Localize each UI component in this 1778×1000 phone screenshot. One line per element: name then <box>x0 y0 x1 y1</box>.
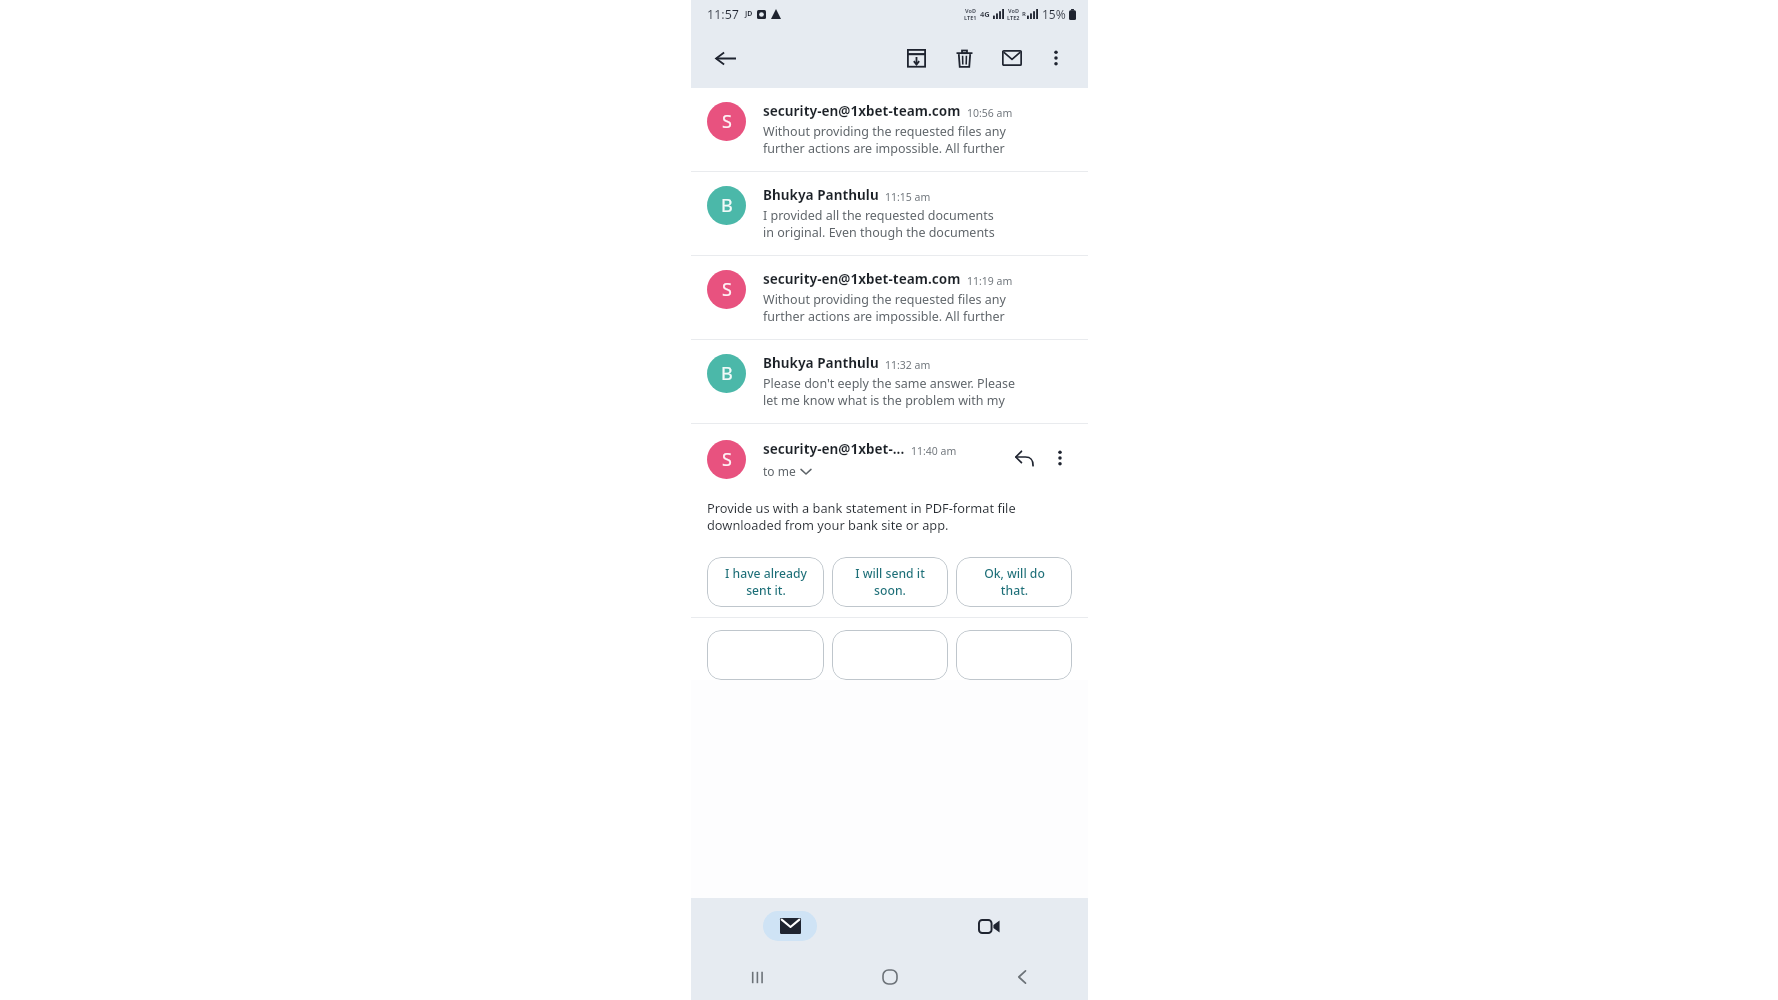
button[interactable]: Mail <box>763 911 817 941</box>
staticText: LTE2 <box>1007 14 1020 21</box>
staticText: security-en@1xbet-... <box>763 440 905 458</box>
button[interactable]: Reply <box>1006 440 1042 476</box>
staticText: Bhukya Panthulu <box>763 186 879 204</box>
button[interactable]: Delete <box>942 36 986 80</box>
staticText: security-en@1xbet-team.com <box>763 102 961 120</box>
staticText: Ok, will do that. <box>984 565 1045 599</box>
button[interactable]: S <box>691 256 1088 339</box>
staticText: 11:40 am <box>911 444 957 458</box>
button[interactable]: Back <box>956 954 1088 1000</box>
staticText: Bhukya Panthulu <box>763 354 879 372</box>
button[interactable]: Home <box>824 954 956 1000</box>
staticText: 4G <box>980 9 990 19</box>
staticText: 10:56 am <box>967 106 1013 120</box>
button[interactable]: Ok, will do that. <box>956 557 1072 607</box>
button[interactable]: Recents <box>691 954 824 1000</box>
staticText: in original. Even though the documents <box>763 224 995 241</box>
staticText: let me know what is the problem with my <box>763 392 1005 409</box>
button[interactable]: More options <box>1036 38 1076 78</box>
button[interactable] <box>956 630 1072 680</box>
staticText: Without providing the requested files an… <box>763 291 1006 308</box>
button[interactable] <box>707 630 824 680</box>
staticText: JD <box>745 9 753 19</box>
staticText: LTE1 <box>964 14 977 21</box>
button[interactable]: to me <box>763 463 811 479</box>
button[interactable]: B <box>691 172 1088 255</box>
staticText: S <box>722 277 732 302</box>
staticText: R <box>1022 10 1026 18</box>
button[interactable]: Mark unread <box>990 36 1034 80</box>
staticText: I will send it soon. <box>855 565 925 599</box>
button[interactable]: More options <box>1042 440 1078 476</box>
staticText: I provided all the requested documents <box>763 207 994 224</box>
staticText: B <box>721 361 733 386</box>
staticText: Please don't eeply the same answer. Plea… <box>763 375 1015 392</box>
staticText: S <box>722 447 732 472</box>
staticText: Provide us with a bank statement in PDF-… <box>707 499 1016 516</box>
staticText: to me <box>763 463 796 479</box>
staticText: 11:57 <box>707 6 739 23</box>
staticText: security-en@1xbet-team.com <box>763 270 961 288</box>
staticText: further actions are impossible. All furt… <box>763 140 1005 157</box>
staticText: 11:32 am <box>885 358 931 372</box>
button[interactable]: I will send it soon. <box>832 557 948 607</box>
staticText: S <box>722 109 732 134</box>
staticText: further actions are impossible. All furt… <box>763 308 1005 325</box>
staticText: downloaded from your bank site or app. <box>707 516 949 533</box>
staticText: VoD <box>1008 7 1019 14</box>
button[interactable]: Back <box>703 36 747 80</box>
staticText: 15% <box>1042 6 1066 22</box>
staticText: VoD <box>965 7 976 14</box>
button[interactable]: B <box>691 340 1088 423</box>
staticText: I have already sent it. <box>725 565 807 599</box>
staticText: 11:15 am <box>885 190 931 204</box>
button[interactable]: I have already sent it. <box>707 557 824 607</box>
staticText: 11:19 am <box>967 274 1013 288</box>
button[interactable]: S <box>691 424 1088 485</box>
button[interactable]: S <box>691 88 1088 171</box>
staticText: B <box>721 193 733 218</box>
button[interactable]: Meet <box>962 911 1016 941</box>
button[interactable]: Archive <box>894 36 938 80</box>
staticText: Without providing the requested files an… <box>763 123 1006 140</box>
button[interactable] <box>832 630 948 680</box>
